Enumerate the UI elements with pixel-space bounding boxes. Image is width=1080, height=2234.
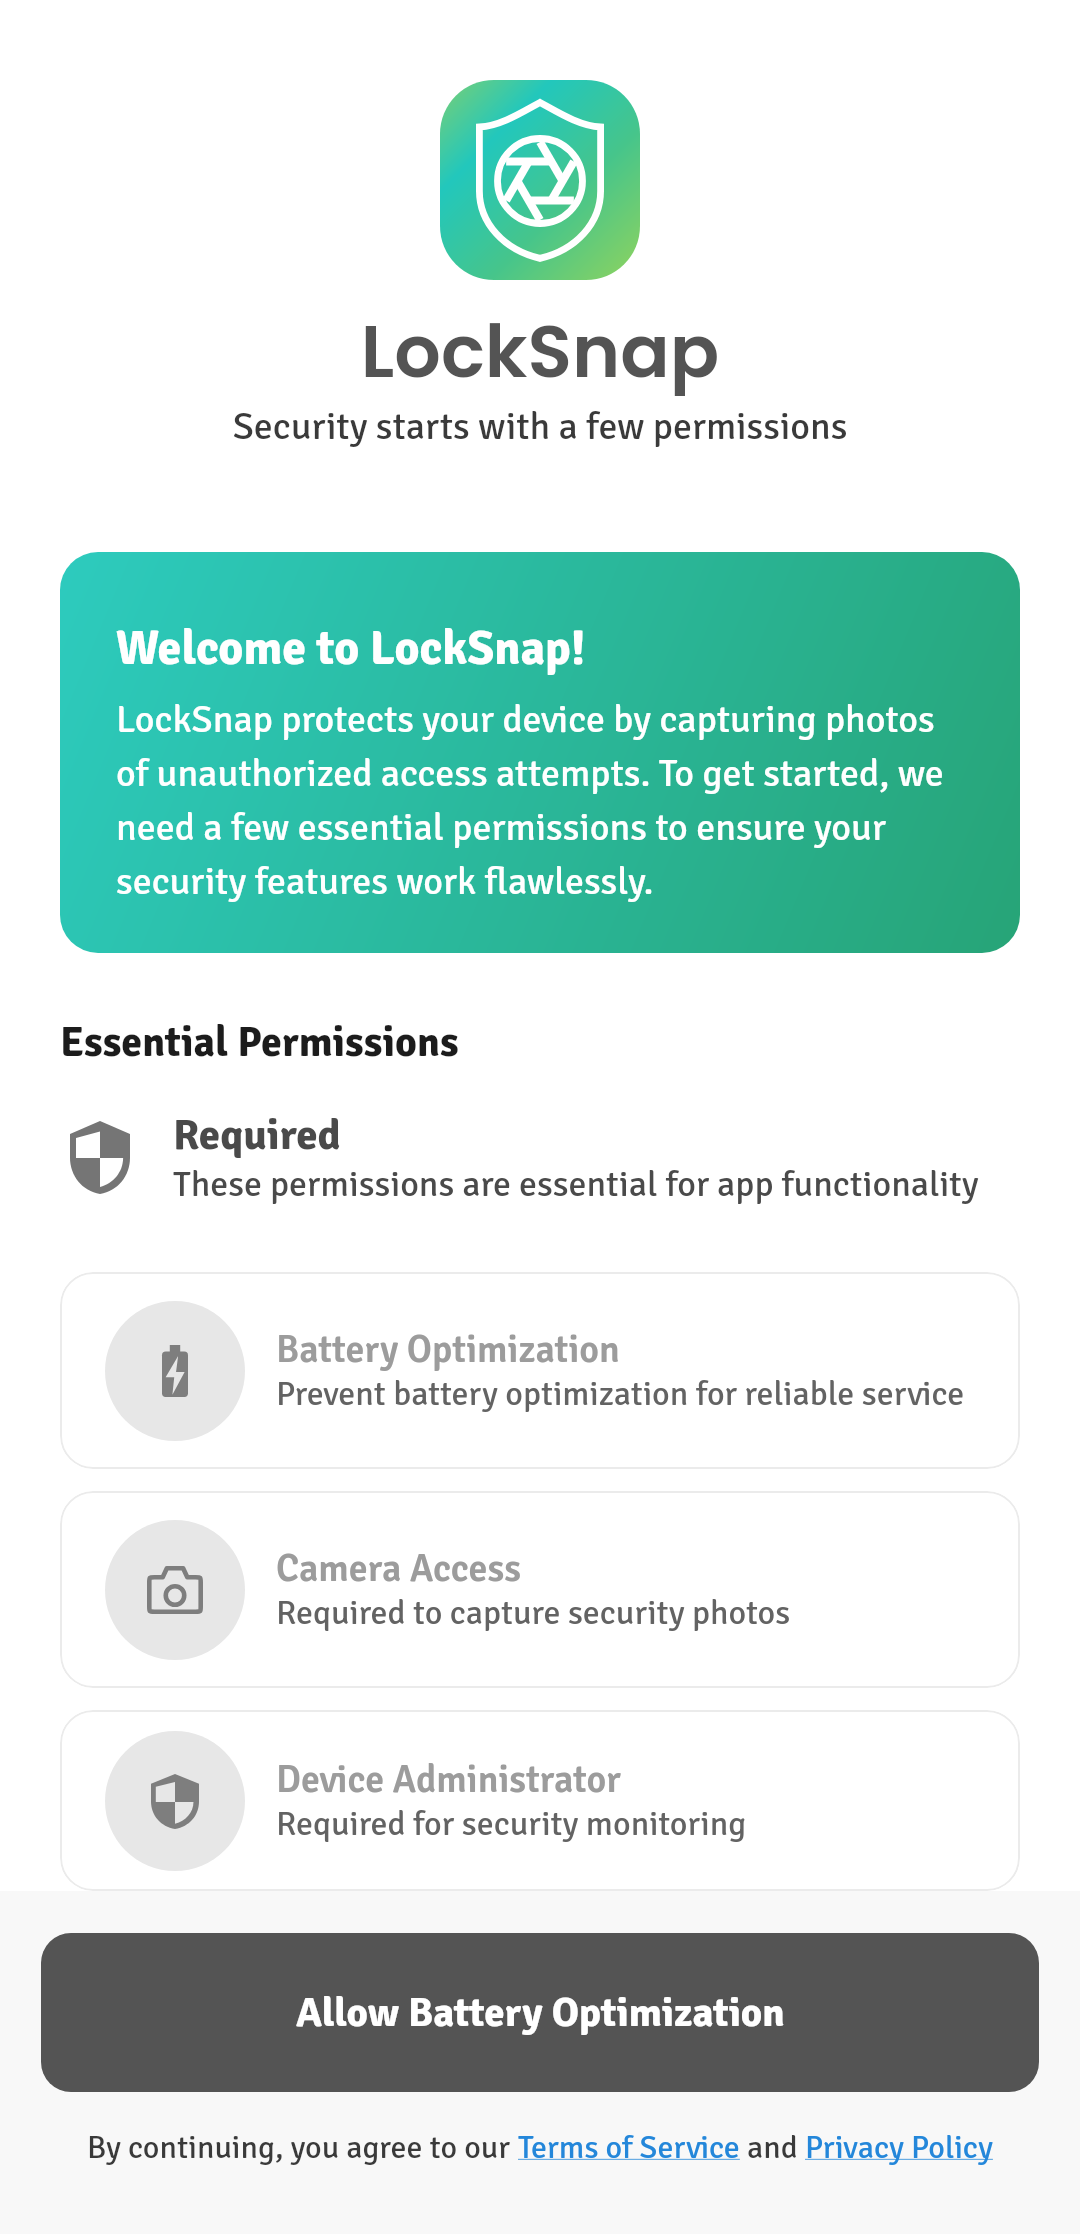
staticText: and xyxy=(740,2128,805,2167)
staticText: Allow Battery Optimization xyxy=(296,1987,785,2038)
button[interactable]: Camera Access xyxy=(60,1491,1020,1688)
staticText: These permissions are essential for app … xyxy=(173,1162,979,1206)
button[interactable]: Battery Optimization xyxy=(60,1272,1020,1469)
staticText: Prevent battery optimization for reliabl… xyxy=(276,1373,965,1415)
staticText: Required for security monitoring xyxy=(276,1803,747,1845)
button[interactable]: Privacy Policy xyxy=(805,2128,993,2167)
staticText: LockSnap xyxy=(0,300,1080,402)
staticText: Battery Optimization xyxy=(276,1326,620,1373)
staticText: Required xyxy=(173,1109,341,1162)
staticText: Security starts with a few permissions xyxy=(0,403,1080,450)
staticText: Welcome to LockSnap! xyxy=(116,619,586,678)
staticText: By continuing, you agree to our xyxy=(87,2128,518,2167)
staticText: Device Administrator xyxy=(276,1756,621,1803)
button[interactable]: Allow Battery Optimization xyxy=(41,1933,1039,2092)
button[interactable]: Terms of Service xyxy=(518,2128,740,2167)
button[interactable]: Device Administrator xyxy=(60,1710,1020,1891)
staticText: Required to capture security photos xyxy=(276,1592,791,1634)
staticText: LockSnap protects your device by capturi… xyxy=(116,696,956,905)
staticText: Essential Permissions xyxy=(60,1017,459,1069)
staticText: Camera Access xyxy=(276,1545,521,1592)
